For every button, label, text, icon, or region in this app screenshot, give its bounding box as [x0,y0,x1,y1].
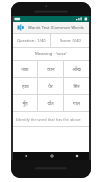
staticText: पैर [48,83,53,89]
staticText: दाँत [47,100,54,106]
button[interactable]: Home [39,152,64,160]
staticText: नाक [21,66,29,72]
button[interactable]: Score: 0/40 [51,34,89,47]
staticText: Identify the word that has the above mea… [16,117,86,122]
button[interactable]: Back [13,152,39,160]
button[interactable]: मुँह [13,95,37,111]
button[interactable]: आँख [64,61,89,77]
button[interactable]: दाँत [38,95,63,111]
staticText: कान [47,66,55,72]
button[interactable]: हाथ [13,78,37,94]
staticText: Meaning : 'nose' [35,51,67,57]
staticText: हाथ [22,83,29,89]
button[interactable]: कान [38,61,63,77]
button[interactable]: App icon [16,23,25,32]
button[interactable]: Recent apps [64,152,89,160]
staticText: Words Test (Common Words #2) [28,25,89,31]
button[interactable]: पैर [38,78,63,94]
staticText: गाल [73,100,80,106]
button[interactable]: सिर [64,78,89,94]
staticText: Score: 0/40 [60,38,81,43]
staticText: सिर [73,83,80,89]
button[interactable]: गाल [64,95,89,111]
staticText: मुँह [22,100,28,106]
staticText: आँख [72,66,81,72]
button[interactable]: Question : 1/40 [13,34,50,47]
button[interactable]: नाक [13,61,37,77]
button[interactable]: App icon [13,22,89,33]
staticText: Question : 1/40 [17,38,46,43]
